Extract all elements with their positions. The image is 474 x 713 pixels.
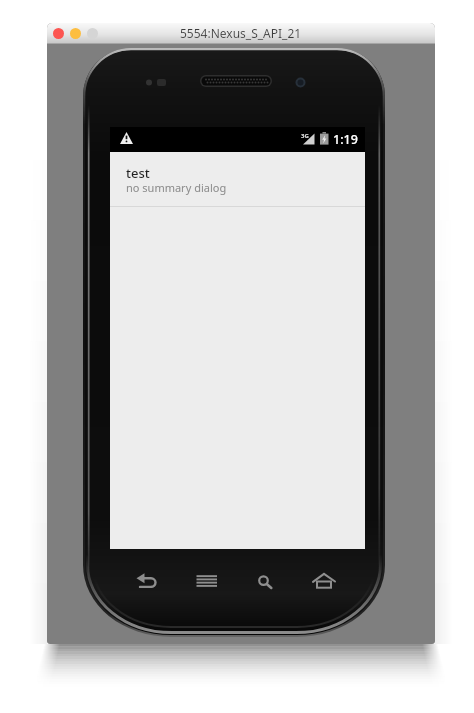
staticText: 3G — [301, 132, 309, 140]
staticText: 1:19 — [333, 131, 358, 148]
staticText: test — [126, 164, 150, 182]
button[interactable] — [53, 28, 64, 39]
button[interactable] — [194, 566, 224, 596]
button[interactable] — [309, 566, 339, 596]
button[interactable] — [87, 28, 98, 39]
button[interactable]: test — [110, 152, 365, 206]
staticText: 5554:Nexus_S_API_21 — [180, 25, 302, 41]
staticText: no summary dialog — [126, 180, 227, 195]
button[interactable] — [249, 566, 279, 596]
button[interactable] — [70, 28, 81, 39]
button[interactable] — [132, 566, 162, 596]
